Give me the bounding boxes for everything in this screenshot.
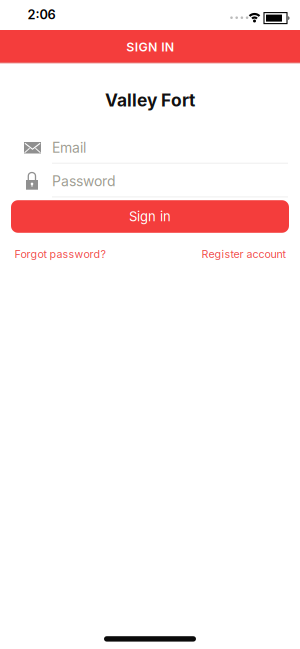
staticText: Email — [52, 139, 86, 156]
button[interactable]: Forgot password? — [14, 247, 105, 260]
secureTextField[interactable]: Password — [52, 173, 288, 190]
staticText: Valley Fort — [105, 90, 195, 111]
staticText: Forgot password? — [14, 247, 105, 260]
staticText: SIGN IN — [126, 39, 174, 54]
staticText: Password — [52, 173, 116, 190]
staticText: Sign in — [129, 209, 171, 224]
textField[interactable]: Email — [52, 139, 288, 156]
staticText: Register account — [201, 247, 285, 260]
staticText: 2:06 — [27, 7, 55, 22]
button[interactable]: Sign in — [11, 200, 289, 233]
button[interactable]: Register account — [201, 247, 285, 260]
